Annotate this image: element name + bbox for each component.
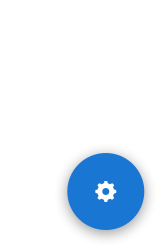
button[interactable]: Settings [67, 153, 144, 230]
